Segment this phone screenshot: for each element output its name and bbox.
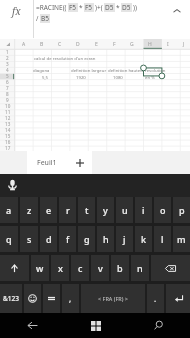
- staticText: t: [85, 204, 89, 216]
- button[interactable]: H: [141, 39, 159, 49]
- staticText: definition hauteur: [108, 67, 145, 73]
- button[interactable]: 17: [0, 145, 15, 151]
- button[interactable]: h: [97, 226, 114, 252]
- button[interactable]: c: [71, 255, 89, 281]
- button[interactable]: k: [135, 226, 152, 252]
- staticText: f: [66, 233, 70, 245]
- button[interactable]: Back: [0, 313, 64, 338]
- button[interactable]: Search: [127, 313, 190, 338]
- staticText: G: [130, 41, 134, 48]
- staticText: /: [36, 14, 39, 23]
- button[interactable]: New sheet: [67, 151, 92, 174]
- button[interactable]: s: [20, 226, 38, 252]
- button[interactable]: Feuil1: [27, 151, 67, 174]
- staticText: g: [84, 233, 90, 245]
- staticText: resolution: [145, 67, 166, 73]
- button[interactable]: 4: [0, 67, 15, 73]
- staticText: d: [46, 233, 52, 245]
- button[interactable]: z: [20, 197, 38, 223]
- button[interactable]: x: [51, 255, 69, 281]
- button[interactable]: A: [15, 39, 33, 49]
- button[interactable]: E: [87, 39, 105, 49]
- button[interactable]: 14: [0, 127, 15, 133]
- staticText: b: [117, 262, 123, 274]
- staticText: definition largeur: [71, 67, 107, 73]
- staticText: l: [161, 233, 164, 245]
- button[interactable]: B: [33, 39, 51, 49]
- button[interactable]: < FRA (FR) >: [81, 284, 145, 313]
- button[interactable]: e: [40, 197, 57, 223]
- staticText: fx: [12, 4, 21, 18]
- button[interactable]: t: [78, 197, 95, 223]
- button[interactable]: b: [111, 255, 129, 281]
- staticText: 13: [5, 121, 11, 127]
- staticText: diagonale: [33, 67, 49, 73]
- button[interactable]: D: [69, 39, 87, 49]
- button[interactable]: I: [159, 39, 177, 49]
- button[interactable]: Backspace: [151, 255, 190, 281]
- button[interactable]: v: [91, 255, 109, 281]
- staticText: 5: [6, 73, 9, 79]
- staticText: J: [183, 41, 185, 48]
- button[interactable]: f: [59, 226, 76, 252]
- button[interactable]: 10: [0, 103, 15, 109]
- button[interactable]: n: [131, 255, 149, 281]
- button[interactable]: F: [105, 39, 123, 49]
- button[interactable]: i: [135, 197, 152, 223]
- button[interactable]: 7: [0, 85, 15, 91]
- button[interactable]: 6: [0, 79, 15, 85]
- button[interactable]: 2: [0, 55, 15, 61]
- button[interactable]: .: [147, 284, 164, 313]
- button[interactable]: 5: [0, 73, 15, 79]
- button[interactable]: 13: [0, 121, 15, 127]
- staticText: 8: [6, 91, 9, 97]
- button[interactable]: q: [0, 226, 18, 252]
- button[interactable]: 16: [0, 139, 15, 145]
- button[interactable]: r: [59, 197, 76, 223]
- staticText: =RACINE((: [36, 3, 67, 12]
- button[interactable]: Insert function: [0, 0, 33, 38]
- button[interactable]: Enter: [166, 284, 190, 313]
- button[interactable]: w: [31, 255, 49, 281]
- button[interactable]: G: [123, 39, 141, 49]
- button[interactable]: 3: [0, 61, 15, 67]
- button[interactable]: g: [78, 226, 95, 252]
- button[interactable]: J: [177, 39, 190, 49]
- button[interactable]: m: [173, 226, 190, 252]
- button[interactable]: y: [97, 197, 114, 223]
- button[interactable]: u: [116, 197, 133, 223]
- button[interactable]: Shift: [0, 255, 29, 281]
- button[interactable]: [43, 284, 60, 313]
- button[interactable]: 1: [0, 49, 15, 55]
- staticText: 17: [5, 145, 11, 151]
- staticText: calcul de resolution d'un ecran: [34, 55, 96, 61]
- staticText: 15: [5, 133, 11, 139]
- button[interactable]: 12: [0, 115, 15, 121]
- button[interactable]: &123: [0, 284, 22, 313]
- button[interactable]: o: [154, 197, 171, 223]
- staticText: *: [116, 3, 120, 12]
- button[interactable]: d: [40, 226, 57, 252]
- button[interactable]: Expand formula bar: [170, 4, 184, 18]
- button[interactable]: Voice input: [2, 174, 22, 194]
- button[interactable]: p: [173, 197, 190, 223]
- staticText: A: [22, 41, 26, 48]
- button[interactable]: ,: [62, 284, 79, 313]
- staticText: < FRA (FR) >: [98, 295, 128, 302]
- button[interactable]: Start: [64, 313, 127, 338]
- button[interactable]: 8: [0, 91, 15, 97]
- button[interactable]: a: [0, 197, 18, 223]
- button[interactable]: 9: [0, 97, 15, 103]
- staticText: 7: [6, 85, 9, 91]
- staticText: 11: [5, 109, 11, 115]
- staticText: D5: [105, 3, 114, 12]
- staticText: .: [154, 293, 157, 304]
- button[interactable]: 15: [0, 133, 15, 139]
- button[interactable]: Emoji: [24, 284, 41, 313]
- button[interactable]: C: [51, 39, 69, 49]
- staticText: F5: [85, 3, 93, 12]
- staticText: j: [123, 233, 126, 245]
- button[interactable]: j: [116, 226, 133, 252]
- button[interactable]: 11: [0, 109, 15, 115]
- button[interactable]: l: [154, 226, 171, 252]
